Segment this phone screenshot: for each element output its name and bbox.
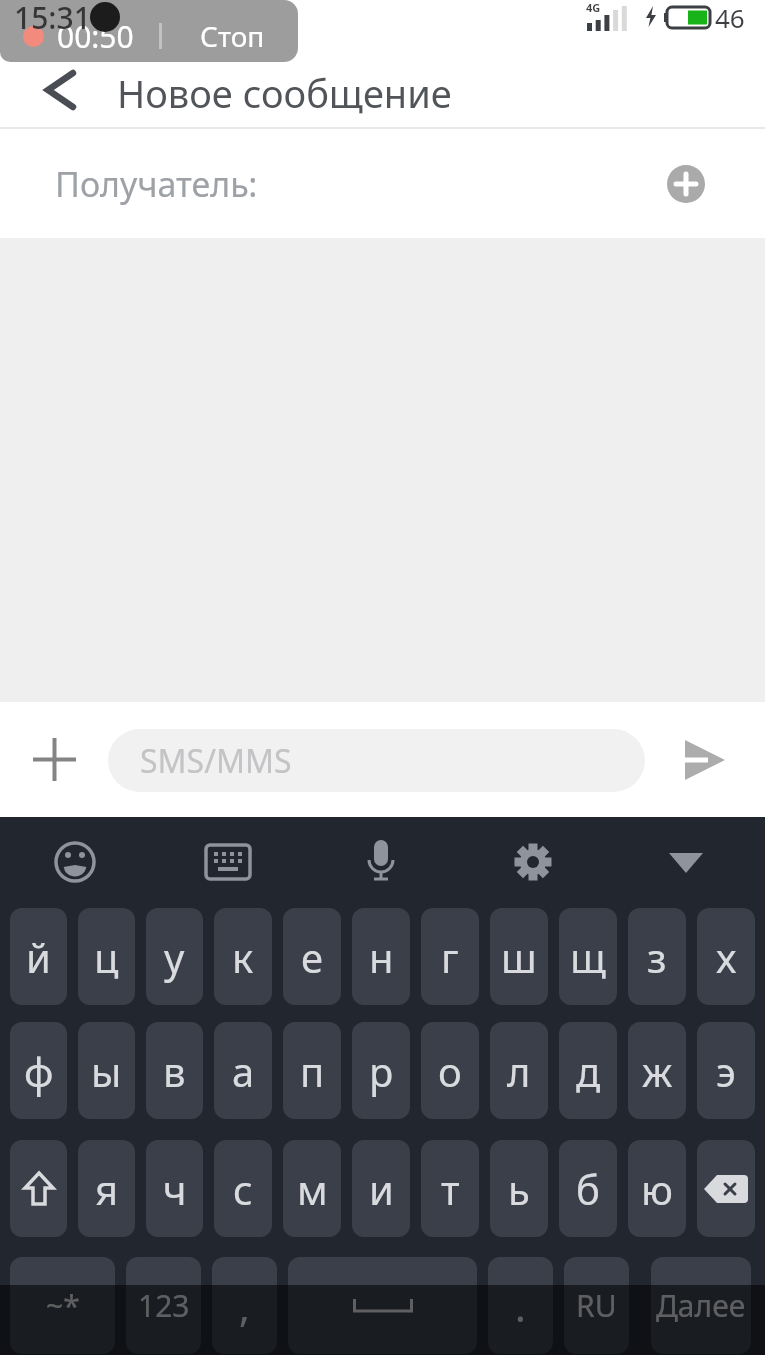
button[interactable]: ш bbox=[490, 908, 548, 1005]
button[interactable]: с bbox=[214, 1140, 272, 1237]
button[interactable]: е bbox=[283, 908, 341, 1005]
staticText: ч bbox=[163, 1162, 187, 1216]
button[interactable]: т bbox=[421, 1140, 479, 1237]
button[interactable]: ж bbox=[628, 1022, 686, 1119]
staticText: у bbox=[164, 930, 185, 984]
staticText: е bbox=[301, 930, 324, 984]
staticText: п bbox=[300, 1044, 325, 1098]
staticText: в bbox=[163, 1044, 186, 1098]
button[interactable]: я bbox=[78, 1140, 135, 1237]
button[interactable]: д bbox=[559, 1022, 617, 1119]
staticText: . bbox=[515, 1279, 526, 1333]
staticText: ы bbox=[91, 1044, 122, 1098]
button[interactable] bbox=[0, 62, 70, 127]
button[interactable]: н bbox=[352, 908, 410, 1005]
staticText: р bbox=[369, 1044, 394, 1098]
button[interactable] bbox=[10, 1140, 67, 1237]
staticText: д bbox=[576, 1044, 601, 1098]
staticText: Новое сообщение bbox=[117, 67, 452, 119]
button[interactable]: RU bbox=[564, 1257, 629, 1354]
button[interactable]: з bbox=[628, 908, 686, 1005]
button[interactable]: 123 bbox=[126, 1257, 201, 1354]
button[interactable]: ~* bbox=[10, 1257, 115, 1354]
button[interactable]: Стоп bbox=[200, 10, 265, 62]
button[interactable] bbox=[0, 817, 153, 908]
staticText: з bbox=[647, 930, 667, 984]
staticText: б bbox=[576, 1162, 600, 1216]
button[interactable]: к bbox=[214, 908, 272, 1005]
button[interactable]: и bbox=[352, 1140, 410, 1237]
button[interactable]: п bbox=[283, 1022, 341, 1119]
staticText: к bbox=[232, 930, 254, 984]
staticText: , bbox=[239, 1279, 250, 1333]
button[interactable]: б bbox=[559, 1140, 617, 1237]
staticText: м bbox=[297, 1162, 328, 1216]
button[interactable]: а bbox=[214, 1022, 272, 1119]
button[interactable] bbox=[697, 1140, 755, 1237]
button[interactable] bbox=[612, 817, 765, 908]
staticText: с bbox=[233, 1162, 253, 1216]
button[interactable] bbox=[306, 817, 459, 908]
button[interactable] bbox=[667, 165, 705, 203]
staticText: ь bbox=[508, 1162, 530, 1216]
staticText: й bbox=[26, 930, 51, 984]
staticText: щ bbox=[570, 930, 606, 984]
staticText: Далее bbox=[656, 1285, 746, 1326]
staticText: н bbox=[369, 930, 394, 984]
staticText: 4G bbox=[586, 0, 601, 15]
staticText: т bbox=[441, 1162, 460, 1216]
staticText: Получатель: bbox=[55, 161, 258, 207]
staticText: ~* bbox=[46, 1285, 80, 1326]
staticText: 123 bbox=[138, 1285, 190, 1326]
button[interactable]: р bbox=[352, 1022, 410, 1119]
staticText: 46 bbox=[715, 0, 745, 34]
staticText: ф bbox=[24, 1044, 54, 1098]
button[interactable]: ь bbox=[490, 1140, 548, 1237]
staticText: э bbox=[716, 1044, 736, 1098]
button[interactable]: х bbox=[697, 908, 755, 1005]
button[interactable]: э bbox=[697, 1022, 755, 1119]
staticText: и bbox=[369, 1162, 394, 1216]
staticText: ц bbox=[94, 930, 119, 984]
button[interactable]: ф bbox=[10, 1022, 67, 1119]
button[interactable]: у bbox=[146, 908, 203, 1005]
button[interactable]: ы bbox=[78, 1022, 135, 1119]
button[interactable]: SMS/MMS bbox=[108, 729, 645, 792]
button[interactable]: ч bbox=[146, 1140, 203, 1237]
staticText: ю bbox=[641, 1162, 673, 1216]
button[interactable]: й bbox=[10, 908, 67, 1005]
button[interactable] bbox=[665, 728, 745, 794]
button[interactable] bbox=[153, 817, 306, 908]
staticText: я bbox=[95, 1162, 119, 1216]
button[interactable]: в bbox=[146, 1022, 203, 1119]
staticText: 15:31 bbox=[14, 0, 91, 38]
button[interactable]: щ bbox=[559, 908, 617, 1005]
button[interactable] bbox=[459, 817, 612, 908]
button[interactable] bbox=[11, 702, 97, 817]
staticText: х bbox=[716, 930, 737, 984]
staticText: Стоп bbox=[200, 17, 265, 55]
staticText: а bbox=[232, 1044, 255, 1098]
button[interactable]: ц bbox=[78, 908, 135, 1005]
button[interactable]: м bbox=[283, 1140, 341, 1237]
staticText: RU bbox=[576, 1285, 617, 1326]
button[interactable]: . bbox=[488, 1257, 553, 1354]
staticText: 00:50 bbox=[57, 16, 134, 57]
button[interactable]: Далее bbox=[651, 1257, 751, 1354]
button[interactable] bbox=[288, 1257, 477, 1354]
staticText: ж bbox=[642, 1044, 673, 1098]
button[interactable]: о bbox=[421, 1022, 479, 1119]
staticText: г bbox=[441, 930, 459, 984]
staticText: ш bbox=[501, 930, 537, 984]
staticText: о bbox=[438, 1044, 462, 1098]
button[interactable]: , bbox=[212, 1257, 277, 1354]
staticText: л bbox=[507, 1044, 531, 1098]
button[interactable]: г bbox=[421, 908, 479, 1005]
button[interactable]: ю bbox=[628, 1140, 686, 1237]
staticText: SMS/MMS bbox=[140, 739, 292, 783]
button[interactable]: л bbox=[490, 1022, 548, 1119]
